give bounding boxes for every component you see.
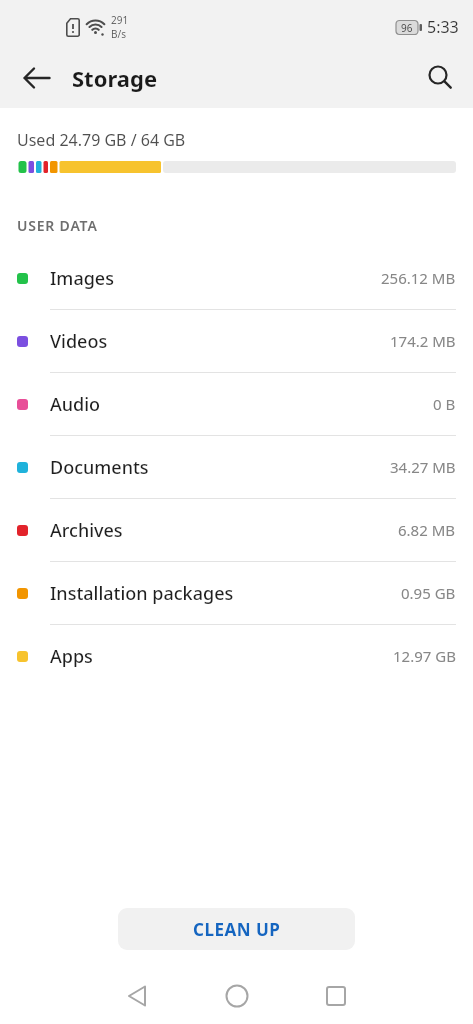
button[interactable] bbox=[419, 56, 463, 100]
staticText: 6.82 MB bbox=[398, 520, 456, 540]
staticText: Used 24.79 GB / 64 GB bbox=[17, 129, 186, 151]
staticText: 0.95 GB bbox=[401, 583, 456, 603]
staticText: Archives bbox=[50, 518, 123, 543]
staticText: 291 bbox=[111, 13, 129, 27]
staticText: 5:33 bbox=[427, 16, 459, 38]
button[interactable]: Images bbox=[0, 247, 473, 310]
staticText: 0 B bbox=[433, 394, 456, 414]
staticText: 96 bbox=[401, 21, 413, 35]
staticText: Audio bbox=[50, 392, 101, 417]
staticText: 12.97 GB bbox=[393, 646, 456, 666]
button[interactable]: Videos bbox=[0, 310, 473, 373]
staticText: 256.12 MB bbox=[381, 268, 456, 288]
button[interactable] bbox=[215, 974, 259, 1018]
staticText: USER DATA bbox=[17, 216, 98, 235]
button[interactable] bbox=[115, 974, 159, 1018]
button[interactable]: CLEAN UP bbox=[118, 908, 355, 950]
button[interactable]: Documents bbox=[0, 436, 473, 499]
staticText: B/s bbox=[111, 27, 127, 41]
staticText: Documents bbox=[50, 455, 149, 480]
staticText: 174.2 MB bbox=[390, 331, 456, 351]
staticText: CLEAN UP bbox=[193, 918, 281, 941]
button[interactable] bbox=[314, 974, 358, 1018]
button[interactable]: Archives bbox=[0, 499, 473, 562]
button[interactable] bbox=[15, 56, 59, 100]
staticText: Videos bbox=[50, 329, 108, 354]
staticText: Installation packages bbox=[50, 581, 234, 606]
staticText: Storage bbox=[72, 63, 158, 93]
staticText: Images bbox=[50, 266, 114, 291]
staticText: Apps bbox=[50, 644, 93, 669]
button[interactable]: Apps bbox=[0, 625, 473, 687]
button[interactable]: Audio bbox=[0, 373, 473, 436]
button[interactable]: Installation packages bbox=[0, 562, 473, 625]
staticText: 34.27 MB bbox=[390, 457, 456, 477]
